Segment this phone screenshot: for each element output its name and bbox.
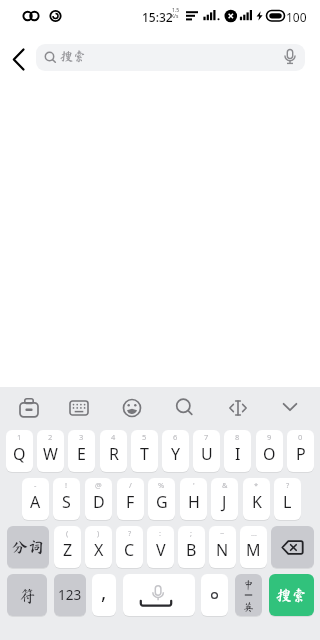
- button[interactable]: …: [240, 526, 267, 568]
- button[interactable]: ?: [274, 478, 301, 520]
- staticText: B: [186, 539, 197, 561]
- staticText: &: [222, 480, 228, 490]
- staticText: V: [156, 539, 166, 561]
- staticText: E: [77, 443, 86, 465]
- button[interactable]: (: [54, 526, 81, 568]
- staticText: 6: [173, 432, 178, 442]
- staticText: 搜索: [60, 50, 87, 63]
- staticText: ;: [190, 528, 193, 538]
- staticText: 3: [79, 432, 84, 442]
- staticText: (: [66, 528, 69, 538]
- button[interactable]: ,: [92, 574, 116, 616]
- button[interactable]: 2: [37, 430, 64, 472]
- staticText: 分词: [12, 539, 45, 555]
- button[interactable]: [268, 388, 312, 430]
- button[interactable]: @: [85, 478, 112, 520]
- button[interactable]: [57, 388, 101, 430]
- button[interactable]: 0: [287, 430, 314, 472]
- staticText: %: [158, 480, 165, 490]
- button[interactable]: 符: [7, 574, 47, 616]
- staticText: Q: [13, 443, 26, 465]
- button[interactable]: [110, 388, 154, 430]
- staticText: ?: [286, 480, 290, 490]
- staticText: 9: [267, 432, 272, 442]
- button[interactable]: 1: [6, 430, 33, 472]
- button[interactable]: *: [243, 478, 270, 520]
- staticText: 英: [243, 601, 254, 612]
- button[interactable]: %: [148, 478, 175, 520]
- staticText: 1: [17, 432, 22, 442]
- staticText: W: [43, 443, 58, 465]
- staticText: 搜索: [276, 587, 308, 603]
- staticText: 4: [111, 432, 116, 442]
- button[interactable]: [163, 388, 207, 430]
- button[interactable]: [216, 388, 260, 430]
- staticText: 123: [58, 586, 82, 604]
- staticText: X: [94, 539, 104, 561]
- button[interactable]: [7, 388, 51, 430]
- staticText: 100: [286, 9, 307, 25]
- button[interactable]: [123, 574, 195, 616]
- staticText: 8: [235, 432, 240, 442]
- staticText: P: [296, 443, 306, 465]
- button[interactable]: 123: [54, 574, 86, 616]
- staticText: 中: [243, 579, 254, 590]
- staticText: 2: [48, 432, 53, 442]
- staticText: 7: [204, 432, 209, 442]
- button[interactable]: :: [147, 526, 174, 568]
- staticText: 15:32: [142, 9, 173, 25]
- staticText: Z: [63, 539, 73, 561]
- staticText: U: [201, 443, 213, 465]
- staticText: M: [246, 539, 261, 561]
- staticText: A: [30, 491, 41, 513]
- staticText: ): [97, 528, 100, 538]
- button[interactable]: 3: [68, 430, 95, 472]
- button[interactable]: 8: [224, 430, 251, 472]
- staticText: D: [93, 491, 105, 513]
- button[interactable]: ;: [178, 526, 205, 568]
- button[interactable]: 中: [235, 574, 262, 616]
- staticText: ,: [101, 578, 107, 605]
- button[interactable]: ): [85, 526, 112, 568]
- staticText: T: [140, 443, 149, 465]
- button[interactable]: 4: [100, 430, 127, 472]
- staticText: L: [283, 491, 292, 513]
- button[interactable]: [36, 44, 305, 71]
- button[interactable]: [6, 46, 34, 73]
- staticText: G: [156, 491, 168, 513]
- staticText: …: [251, 528, 257, 538]
- staticText: *: [254, 480, 259, 490]
- button[interactable]: 7: [193, 430, 220, 472]
- staticText: I: [235, 443, 241, 465]
- button[interactable]: 5: [131, 430, 158, 472]
- button[interactable]: 分词: [7, 526, 49, 568]
- staticText: J: [222, 491, 227, 513]
- staticText: -: [34, 480, 37, 490]
- staticText: Y: [171, 443, 181, 465]
- button[interactable]: 9: [256, 430, 283, 472]
- staticText: K: [252, 491, 262, 513]
- button[interactable]: [201, 574, 228, 616]
- button[interactable]: 搜索: [269, 574, 314, 616]
- staticText: :: [159, 528, 162, 538]
- button[interactable]: &: [211, 478, 238, 520]
- button[interactable]: ~: [209, 526, 236, 568]
- button[interactable]: 6: [162, 430, 189, 472]
- button[interactable]: !: [53, 478, 80, 520]
- button[interactable]: ?: [116, 526, 143, 568]
- button[interactable]: [271, 526, 314, 568]
- staticText: ': [193, 480, 195, 490]
- button[interactable]: /: [117, 478, 144, 520]
- button[interactable]: ': [180, 478, 207, 520]
- staticText: 5: [142, 432, 147, 442]
- staticText: ~: [220, 528, 225, 538]
- staticText: ?: [128, 528, 132, 538]
- staticText: N: [216, 539, 229, 561]
- staticText: C: [124, 539, 135, 561]
- staticText: K/s: [171, 13, 179, 20]
- staticText: H: [188, 491, 200, 513]
- button[interactable]: -: [22, 478, 49, 520]
- staticText: @: [95, 480, 102, 490]
- staticText: 符: [19, 587, 36, 604]
- staticText: F: [126, 491, 135, 513]
